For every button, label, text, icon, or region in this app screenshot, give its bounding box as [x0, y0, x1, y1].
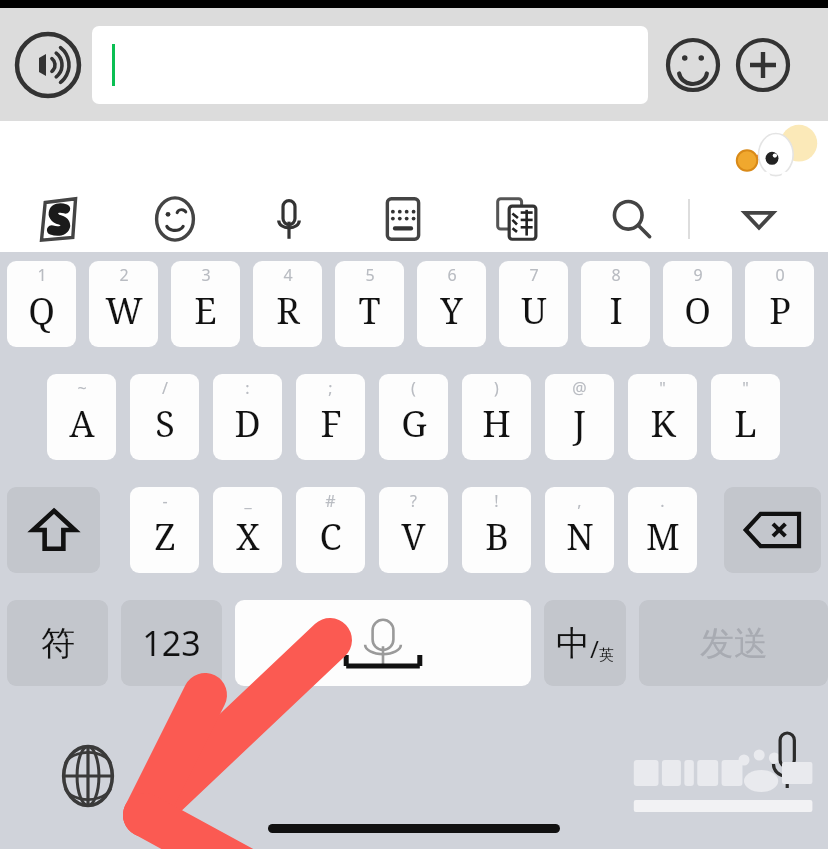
staticText: 3 — [201, 264, 211, 286]
button[interactable]: Sticker suggestion — [724, 127, 820, 181]
staticText: , — [577, 490, 582, 512]
button[interactable]: @ — [545, 374, 614, 460]
button[interactable]: 1 — [7, 261, 76, 347]
staticText: N — [566, 512, 594, 561]
button[interactable]: Emoji — [662, 34, 724, 96]
staticText: D — [234, 399, 261, 448]
staticText: _ — [244, 490, 252, 512]
staticText: 6 — [447, 264, 457, 286]
staticText: Z — [154, 512, 176, 561]
button[interactable]: , — [545, 487, 614, 573]
button[interactable]: 6 — [417, 261, 486, 347]
staticText: 7 — [529, 264, 539, 286]
button[interactable]: / — [130, 374, 199, 460]
button[interactable]: 4 — [253, 261, 322, 347]
staticText: L — [734, 399, 757, 448]
staticText: . — [660, 490, 665, 512]
button[interactable]: Shift — [7, 487, 100, 573]
button[interactable]: Space — [235, 600, 531, 686]
button[interactable]: ? — [379, 487, 448, 573]
button[interactable]: " — [711, 374, 780, 460]
staticText: # — [325, 490, 336, 512]
staticText: / — [162, 377, 168, 399]
button[interactable]: ; — [296, 374, 365, 460]
staticText: 8 — [611, 264, 621, 286]
staticText: ~ — [77, 377, 87, 399]
staticText: : — [245, 377, 250, 399]
button[interactable]: ! — [462, 487, 531, 573]
button[interactable]: ~ — [47, 374, 116, 460]
button[interactable]: 123 — [121, 600, 222, 686]
staticText: V — [401, 512, 426, 561]
button[interactable]: Change language — [56, 744, 120, 808]
staticText: U — [521, 286, 547, 335]
staticText: K — [650, 399, 676, 448]
button[interactable]: Voice — [232, 186, 346, 252]
staticText: " — [742, 377, 749, 399]
button[interactable]: 2 — [89, 261, 158, 347]
button[interactable]: Voice input — [14, 31, 82, 99]
staticText: 0 — [775, 264, 785, 286]
staticText: R — [276, 286, 300, 335]
button[interactable]: Send — [639, 600, 828, 686]
staticText: 5 — [365, 264, 375, 286]
button[interactable]: Search — [574, 186, 688, 252]
staticText: 符 — [41, 622, 75, 665]
staticText: P — [769, 286, 791, 335]
button[interactable]: ) — [462, 374, 531, 460]
staticText: M — [646, 512, 680, 561]
staticText: S — [155, 399, 175, 448]
staticText: Y — [440, 286, 463, 335]
staticText: 2 — [119, 264, 129, 286]
staticText: ? — [410, 490, 417, 512]
staticText: B — [485, 512, 509, 561]
staticText: ; — [328, 377, 333, 399]
button[interactable]: Emoticon — [118, 186, 232, 252]
staticText: " — [659, 377, 666, 399]
staticText: A — [69, 399, 95, 448]
button[interactable]: 7 — [499, 261, 568, 347]
button[interactable]: 9 — [663, 261, 732, 347]
button[interactable]: . — [628, 487, 697, 573]
staticText: O — [684, 286, 711, 335]
button[interactable]: # — [296, 487, 365, 573]
button[interactable]: Translate — [460, 186, 574, 252]
staticText: 4 — [283, 264, 293, 286]
button[interactable]: 8 — [581, 261, 650, 347]
staticText: J — [573, 399, 586, 448]
staticText: G — [401, 399, 427, 448]
button[interactable]: Hide keyboard — [690, 186, 828, 252]
button[interactable]: - — [130, 487, 199, 573]
button[interactable]: ( — [379, 374, 448, 460]
staticText: F — [320, 399, 342, 448]
staticText: 英 — [599, 646, 614, 665]
staticText: E — [194, 286, 217, 335]
staticText: I — [609, 286, 623, 335]
staticText: ( — [411, 377, 416, 399]
button[interactable]: Backspace — [724, 487, 821, 573]
button[interactable]: _ — [213, 487, 282, 573]
button[interactable]: : — [213, 374, 282, 460]
button[interactable]: Keyboard — [346, 186, 460, 252]
staticText: T — [358, 286, 381, 335]
staticText: H — [482, 399, 511, 448]
button[interactable]: 符 — [7, 600, 108, 686]
staticText: ! — [494, 490, 499, 512]
button[interactable]: 5 — [335, 261, 404, 347]
button[interactable]: Sogou — [0, 186, 118, 252]
button[interactable]: " — [628, 374, 697, 460]
staticText: C — [319, 512, 342, 561]
staticText: ) — [494, 377, 499, 399]
button[interactable]: 3 — [171, 261, 240, 347]
staticText: 123 — [142, 620, 201, 666]
staticText: 9 — [693, 264, 703, 286]
button[interactable]: 0 — [745, 261, 814, 347]
button[interactable]: Chinese English toggle — [544, 600, 626, 686]
staticText: 中 — [556, 622, 590, 665]
staticText: - — [162, 490, 168, 512]
button[interactable] — [92, 26, 648, 104]
staticText: 发送 — [700, 622, 768, 665]
staticText: 1 — [37, 264, 47, 286]
button[interactable]: More — [732, 34, 794, 96]
staticText: / — [590, 632, 599, 665]
